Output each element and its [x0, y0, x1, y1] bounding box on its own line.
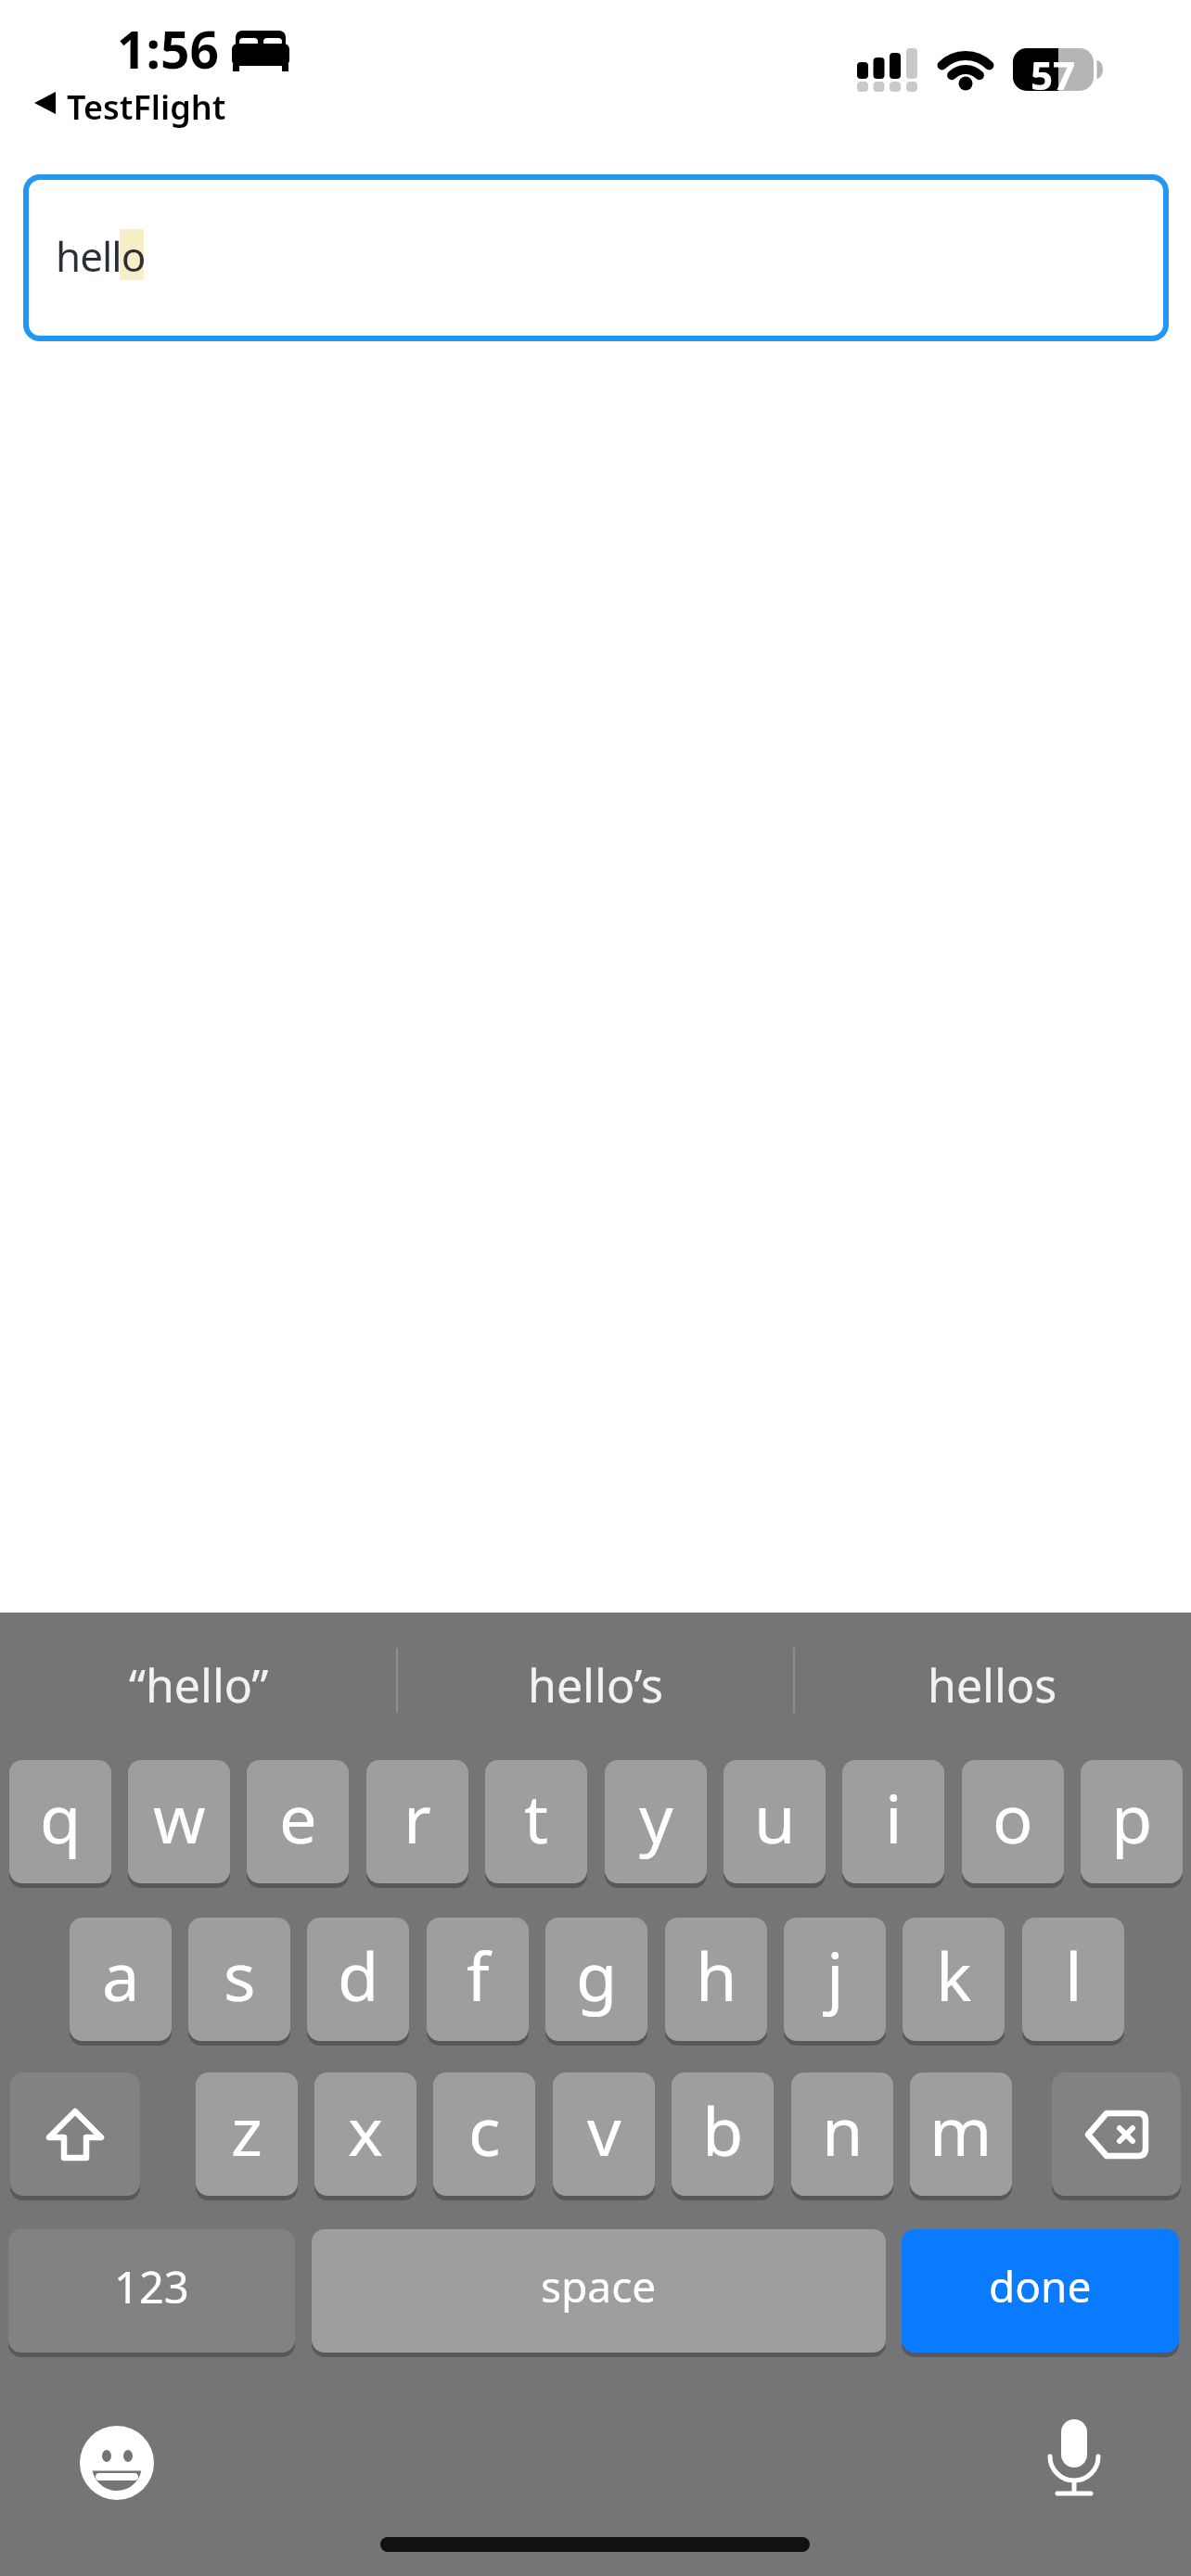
staticText: c	[468, 2085, 501, 2175]
button[interactable]: g	[545, 1918, 647, 2041]
button[interactable]	[10, 2072, 140, 2196]
staticText: z	[231, 2085, 263, 2175]
staticText: k	[936, 1930, 972, 2021]
staticText: p	[1111, 1772, 1153, 1863]
button[interactable]: p	[1081, 1760, 1183, 1883]
staticText: q	[40, 1772, 82, 1863]
staticText: hello’s	[528, 1653, 663, 1716]
staticText: f	[467, 1930, 490, 2021]
staticText: w	[153, 1772, 206, 1863]
button[interactable]: w	[128, 1760, 230, 1883]
staticText: i	[885, 1772, 903, 1863]
button[interactable]: c	[433, 2072, 535, 2196]
button[interactable]: i	[842, 1760, 944, 1883]
button[interactable]	[23, 174, 1169, 341]
button[interactable]: n	[791, 2072, 893, 2196]
staticText: j	[826, 1930, 844, 2021]
button[interactable]: z	[196, 2072, 298, 2196]
staticText: u	[754, 1772, 796, 1863]
staticText: l	[1065, 1930, 1082, 2021]
staticText: g	[576, 1930, 618, 2021]
button[interactable]: v	[553, 2072, 655, 2196]
staticText: n	[822, 2085, 864, 2175]
staticText: x	[348, 2085, 384, 2175]
button[interactable]: x	[314, 2072, 416, 2196]
button[interactable]: j	[784, 1918, 886, 2041]
button[interactable]: hellos	[794, 1629, 1191, 1741]
button[interactable]: l	[1022, 1918, 1124, 2041]
button[interactable]: u	[724, 1760, 826, 1883]
staticText: e	[279, 1772, 317, 1863]
button[interactable]: space	[312, 2229, 886, 2353]
button[interactable]: k	[903, 1918, 1005, 2041]
button[interactable]: hello’s	[397, 1629, 794, 1741]
button[interactable]: h	[665, 1918, 767, 2041]
button[interactable]: t	[485, 1760, 587, 1883]
staticText: 1:56	[117, 14, 219, 83]
staticText: b	[702, 2085, 744, 2175]
staticText: space	[541, 2257, 657, 2315]
staticText: hellos	[928, 1653, 1057, 1716]
staticText: t	[524, 1772, 548, 1863]
button[interactable]: a	[70, 1918, 172, 2041]
button[interactable]	[1037, 2417, 1111, 2501]
button[interactable]	[28, 82, 227, 124]
staticText: “hello”	[129, 1653, 269, 1716]
button[interactable]: e	[247, 1760, 349, 1883]
staticText: 57	[1031, 48, 1076, 91]
button[interactable]: “hello”	[0, 1629, 397, 1741]
staticText: y	[639, 1772, 673, 1863]
staticText: o	[992, 1772, 1033, 1863]
button[interactable]: q	[9, 1760, 111, 1883]
button[interactable]	[80, 2426, 154, 2500]
button[interactable]: r	[366, 1760, 468, 1883]
staticText: h	[696, 1930, 737, 2021]
button[interactable]: m	[910, 2072, 1012, 2196]
button[interactable]: b	[672, 2072, 774, 2196]
staticText: d	[338, 1930, 379, 2021]
staticText: a	[102, 1930, 140, 2021]
button[interactable]	[1052, 2072, 1181, 2196]
button[interactable]: s	[188, 1918, 290, 2041]
button[interactable]: d	[307, 1918, 409, 2041]
button[interactable]: y	[605, 1760, 707, 1883]
button[interactable]: 123	[8, 2229, 295, 2353]
staticText: m	[929, 2085, 992, 2175]
staticText: s	[224, 1930, 256, 2021]
button[interactable]: done	[902, 2229, 1179, 2353]
staticText: 123	[114, 2257, 189, 2316]
button[interactable]: o	[962, 1760, 1064, 1883]
staticText: r	[403, 1772, 431, 1863]
staticText: v	[587, 2085, 621, 2175]
staticText: TestFlight	[67, 84, 226, 130]
staticText: hello	[56, 228, 146, 284]
staticText: done	[989, 2257, 1092, 2315]
button[interactable]: f	[427, 1918, 529, 2041]
